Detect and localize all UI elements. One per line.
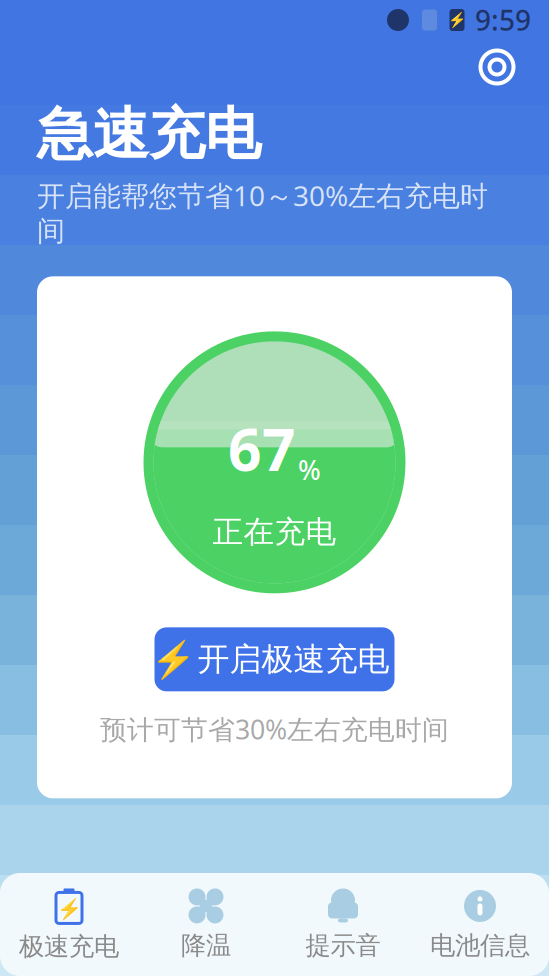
staticText: ⚡ <box>56 897 81 920</box>
button[interactable]: ⚡ <box>154 627 394 691</box>
staticText: 67 <box>228 409 296 487</box>
staticText: ⚡ <box>448 12 466 28</box>
staticText: 开启能帮您节省10～30%左右充电时间 <box>37 177 488 248</box>
staticText: 降温 <box>181 930 231 961</box>
button[interactable]: ⚡ <box>0 878 137 970</box>
button[interactable]: Settings <box>471 41 523 93</box>
staticText: % <box>298 452 321 487</box>
staticText: 极速充电 <box>19 931 119 962</box>
staticText: 9:59 <box>475 1 531 39</box>
staticText: 预计可节省30%左右充电时间 <box>100 711 449 747</box>
staticText: 电池信息 <box>430 930 530 961</box>
button[interactable]: 提示音 <box>274 878 411 970</box>
staticText: 急速充电 <box>37 100 261 169</box>
staticText: 提示音 <box>305 930 380 961</box>
button[interactable]: 降温 <box>137 878 274 970</box>
staticText: ⚡ <box>151 639 196 680</box>
button[interactable]: 电池信息 <box>411 878 548 970</box>
staticText: 开启极速充电 <box>197 640 389 679</box>
staticText: 正在充电 <box>212 513 336 551</box>
